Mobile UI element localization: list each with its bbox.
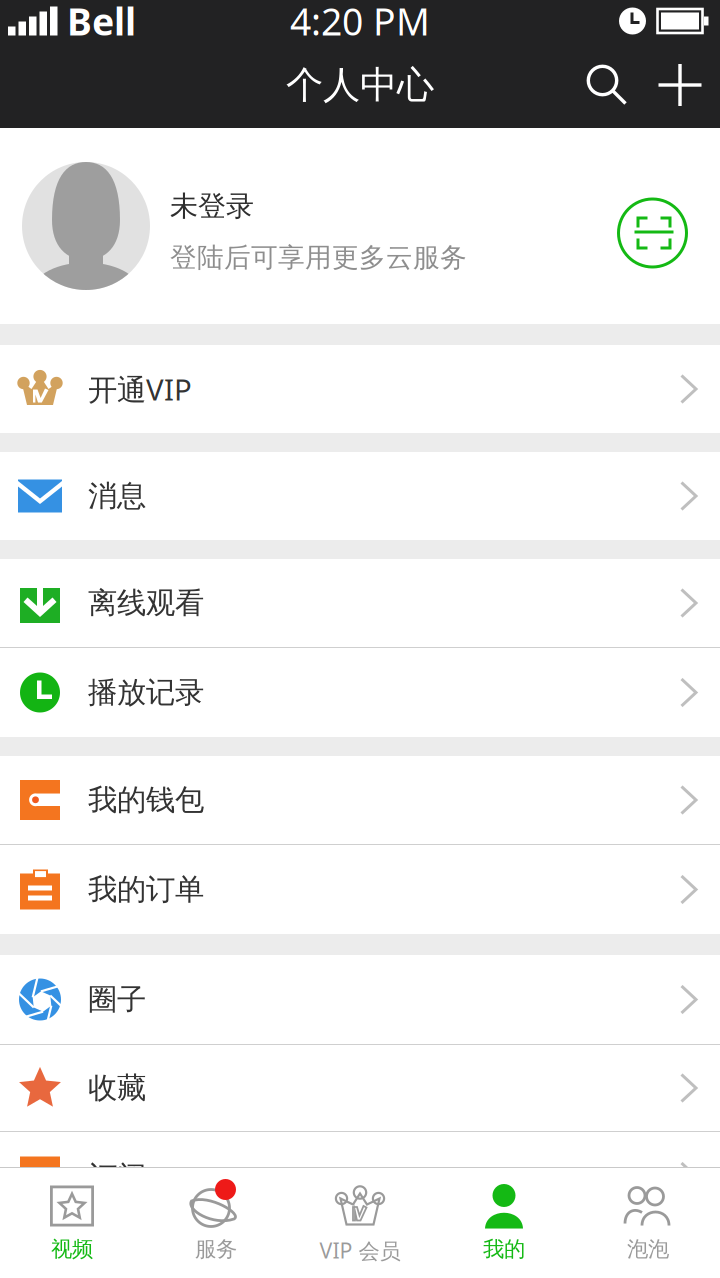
staticText: Bell — [67, 0, 136, 46]
button[interactable]: 播放记录 — [0, 648, 720, 737]
staticText: 播放记录 — [88, 674, 204, 710]
button[interactable]: Search — [566, 47, 648, 123]
staticText: 我的钱包 — [88, 782, 204, 818]
staticText: 圈子 — [88, 981, 146, 1017]
button[interactable]: 我的订单 — [0, 845, 720, 934]
button[interactable]: 泡泡 — [576, 1168, 720, 1278]
button[interactable]: 我的钱包 — [0, 756, 720, 844]
staticText: 服务 — [195, 1236, 237, 1262]
staticText: 开通VIP — [88, 369, 192, 408]
button[interactable]: 开通VIP — [0, 345, 720, 433]
staticText: 个人中心 — [286, 62, 434, 108]
staticText: 消息 — [88, 478, 146, 514]
button[interactable]: 离线观看 — [0, 559, 720, 647]
button[interactable]: Add — [648, 47, 712, 123]
button[interactable]: 订阅 — [0, 1132, 720, 1221]
staticText: 我的订单 — [88, 871, 204, 907]
button[interactable]: 我的 — [432, 1168, 576, 1278]
staticText: 视频 — [51, 1236, 93, 1262]
staticText: 收藏 — [88, 1070, 146, 1106]
button[interactable]: 收藏 — [0, 1045, 720, 1131]
button[interactable]: VIP 会员 — [288, 1168, 432, 1278]
button[interactable]: 服务 — [144, 1168, 288, 1278]
button[interactable]: 消息 — [0, 452, 720, 540]
staticText: VIP 会员 — [319, 1236, 400, 1264]
staticText: 订阅 — [88, 1158, 146, 1194]
button[interactable]: 视频 — [0, 1168, 144, 1278]
staticText: 未登录 — [170, 189, 254, 223]
staticText: 离线观看 — [88, 585, 204, 621]
staticText: 泡泡 — [627, 1236, 669, 1262]
button[interactable]: 未登录 — [0, 128, 720, 324]
staticText: 我的 — [483, 1236, 525, 1262]
staticText: 4:20 PM — [290, 0, 430, 46]
staticText: 登陆后可享用更多云服务 — [170, 241, 467, 274]
button[interactable]: 圈子 — [0, 955, 720, 1044]
